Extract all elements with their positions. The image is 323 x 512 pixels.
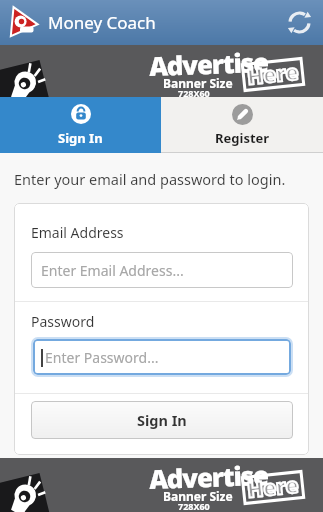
button[interactable]: Enter Email Address... xyxy=(31,252,293,288)
staticText: Banner Size xyxy=(163,75,233,91)
staticText: Here xyxy=(246,470,300,505)
staticText: Email Address xyxy=(31,223,124,242)
staticText: Advertise xyxy=(148,458,268,496)
button[interactable]: Advertise xyxy=(0,458,323,512)
button[interactable]: Sign In xyxy=(31,401,293,439)
staticText: Password xyxy=(31,312,95,331)
button[interactable]: Advertise xyxy=(0,45,323,97)
staticText: Sign In xyxy=(137,410,187,430)
button[interactable]: Register xyxy=(161,97,323,153)
staticText: Banner Size xyxy=(163,488,233,504)
staticText: Enter Password... xyxy=(45,348,159,367)
staticText: 728X60 xyxy=(178,500,210,512)
button[interactable]: Enter Password... xyxy=(33,339,291,375)
staticText: Register xyxy=(215,129,270,147)
staticText: Money Coach xyxy=(48,11,156,34)
staticText: 728X60 xyxy=(178,87,210,97)
staticText: Advertise xyxy=(148,45,268,83)
staticText: Here xyxy=(246,57,300,92)
button[interactable] xyxy=(286,9,313,36)
staticText: Sign In xyxy=(58,129,103,147)
staticText: Here xyxy=(246,57,300,92)
staticText: Enter your email and password to login. xyxy=(14,169,286,189)
staticText: Enter Email Address... xyxy=(41,261,184,280)
staticText: Here xyxy=(246,470,300,505)
button[interactable]: Sign In xyxy=(0,97,161,153)
